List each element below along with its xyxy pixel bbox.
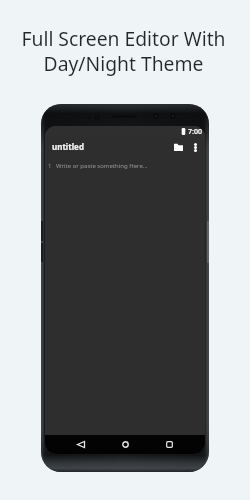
button[interactable]: Open folder	[170, 139, 186, 155]
button[interactable]: More options	[188, 140, 202, 154]
staticText: 7:00	[188, 127, 202, 137]
button[interactable]: Home	[117, 436, 134, 453]
staticText: Write or paste something Here...	[56, 162, 148, 170]
button[interactable]: Recents	[161, 436, 178, 453]
staticText: Full Screen Editor With Day/Night Theme	[21, 25, 226, 76]
staticText: untitled	[52, 141, 84, 152]
staticText: 1	[48, 162, 52, 170]
button[interactable]: Back	[72, 436, 89, 453]
